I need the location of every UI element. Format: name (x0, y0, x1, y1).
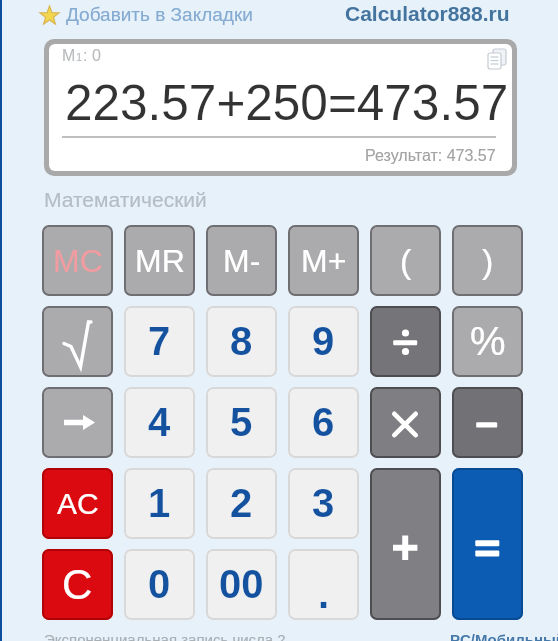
button[interactable]: Добавить в Закладки (66, 4, 253, 25)
button[interactable]: MC (42, 225, 113, 296)
button[interactable]: 8 (206, 306, 277, 377)
button[interactable]: % (452, 306, 523, 377)
button[interactable]: 00 (206, 549, 277, 620)
staticText: 2 (230, 481, 253, 526)
button[interactable]: ( (370, 225, 441, 296)
staticText: M+ (301, 243, 347, 279)
button[interactable]: 6 (288, 387, 359, 458)
button[interactable]: 0 (124, 549, 195, 620)
staticText: Calculator888.ru (345, 2, 510, 25)
button[interactable] (42, 306, 113, 377)
staticText: 0 (148, 562, 171, 607)
staticText: : 0 (83, 47, 101, 65)
button[interactable] (370, 306, 441, 377)
button[interactable]: M- (206, 225, 277, 296)
staticText: % (470, 319, 506, 364)
button[interactable]: 5 (206, 387, 277, 458)
staticText: 7 (148, 319, 171, 364)
button[interactable]: Calculator888.ru (345, 2, 510, 25)
button[interactable]: M+ (288, 225, 359, 296)
staticText: . (318, 572, 330, 617)
staticText: 223.57+250=473.57 (65, 75, 509, 130)
staticText: 1 (148, 481, 171, 526)
button[interactable]: AC (42, 468, 113, 539)
button[interactable]: ) (452, 225, 523, 296)
staticText: PC/Мобильный (450, 631, 558, 641)
staticText: Добавить в Закладки (66, 4, 253, 25)
button[interactable] (42, 387, 113, 458)
staticText: 4 (148, 400, 171, 445)
staticText: Экспоненциальная запись числа 2 (44, 631, 286, 641)
button[interactable]: . (288, 549, 359, 620)
button[interactable] (370, 387, 441, 458)
staticText: 5 (230, 400, 253, 445)
button[interactable]: C (42, 549, 113, 620)
staticText: M- (223, 243, 261, 279)
staticText: Математический (44, 188, 207, 211)
staticText: ) (482, 242, 494, 280)
staticText: 00 (219, 562, 264, 607)
button[interactable] (487, 49, 509, 71)
button[interactable] (452, 468, 523, 620)
button[interactable]: 4 (124, 387, 195, 458)
staticText: ( (400, 242, 412, 280)
button[interactable]: 1 (124, 468, 195, 539)
staticText: 9 (312, 319, 335, 364)
button[interactable]: 7 (124, 306, 195, 377)
button[interactable] (452, 387, 523, 458)
staticText: MC (53, 243, 103, 279)
staticText: MR (135, 243, 185, 279)
staticText: 8 (230, 319, 253, 364)
staticText: 1 (76, 51, 83, 63)
staticText: AC (57, 487, 99, 521)
staticText: Результат: 473.57 (365, 147, 496, 165)
button[interactable]: 2 (206, 468, 277, 539)
button[interactable] (370, 468, 441, 620)
staticText: 6 (312, 400, 335, 445)
button[interactable]: MR (124, 225, 195, 296)
button[interactable]: 3 (288, 468, 359, 539)
staticText: C (62, 561, 93, 608)
staticText: М (62, 47, 76, 65)
staticText: 3 (312, 481, 335, 526)
button[interactable]: 9 (288, 306, 359, 377)
